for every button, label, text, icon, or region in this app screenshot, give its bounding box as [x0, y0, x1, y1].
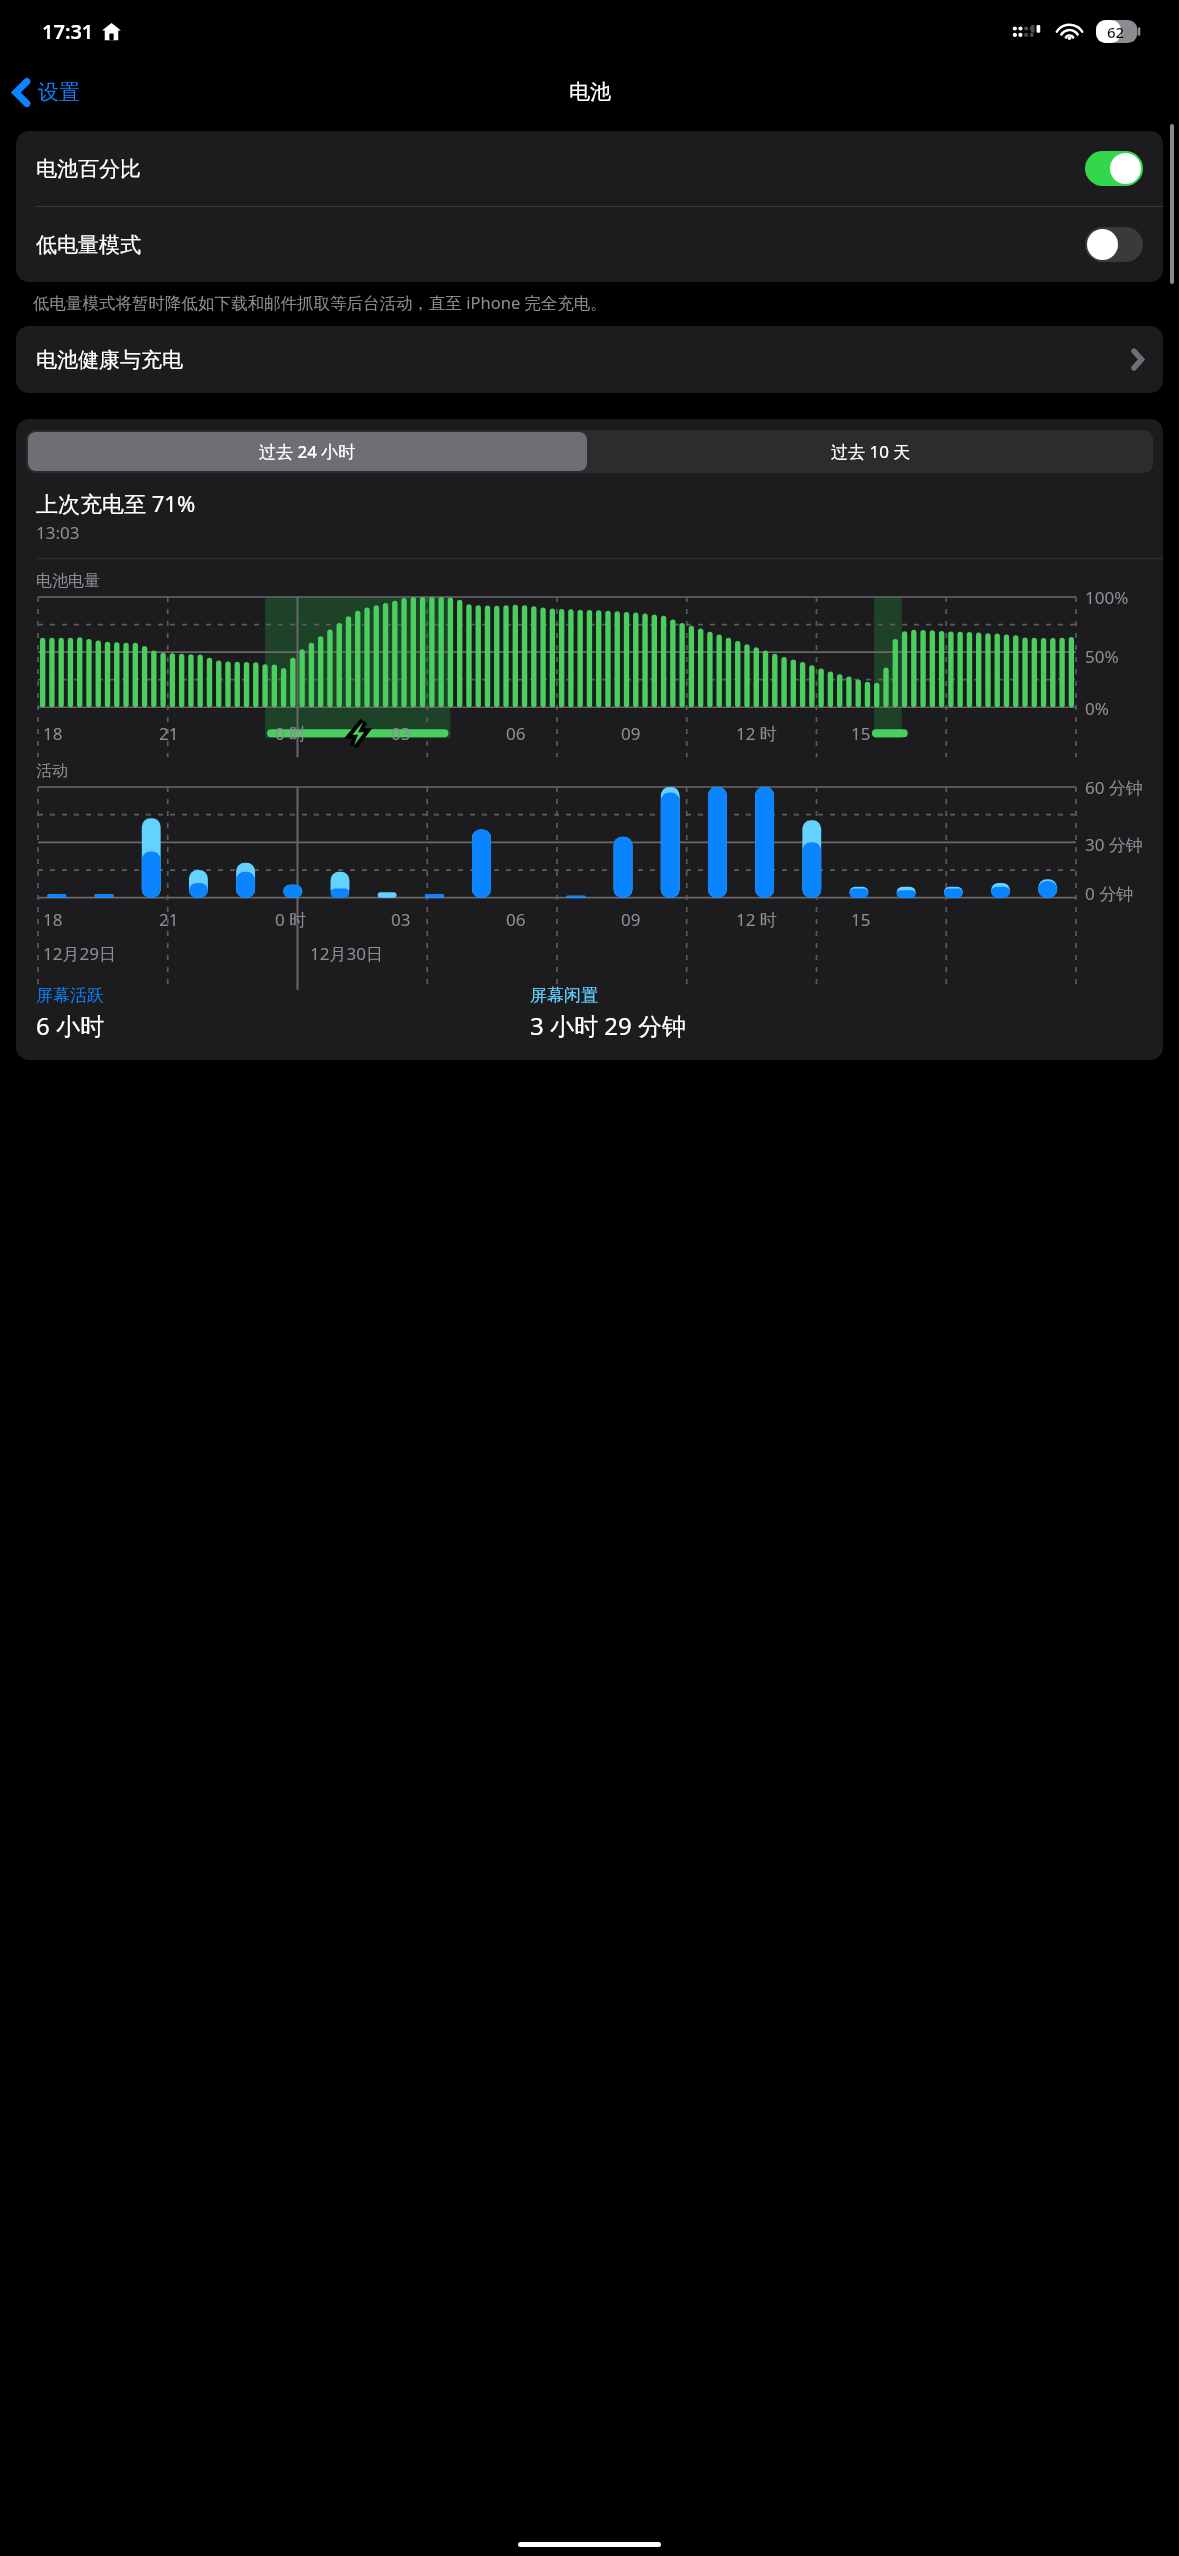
staticText: 50%	[1085, 645, 1119, 668]
staticText: 03	[391, 722, 411, 745]
button[interactable]: 过去 10 天	[591, 432, 1151, 471]
staticText: 09	[621, 722, 641, 745]
staticText: 15	[851, 908, 871, 931]
staticText: 上次充电至 71%	[36, 488, 196, 518]
staticText: 12月30日	[310, 942, 383, 965]
staticText: 09	[621, 908, 641, 931]
staticText: 06	[506, 908, 526, 931]
other: Home	[102, 22, 121, 41]
staticText: 100%	[1085, 586, 1129, 609]
other: 电池百分比	[1085, 151, 1143, 186]
staticText: 电池	[569, 79, 611, 105]
staticText: 电池百分比	[36, 156, 141, 182]
other: 低电量模式	[1085, 227, 1143, 262]
staticText: 低电量模式	[36, 232, 141, 258]
button[interactable]: 过去 24 小时	[28, 432, 587, 471]
staticText: 0 时	[275, 722, 307, 745]
staticText: 12 时	[736, 908, 777, 931]
staticText: 06	[506, 722, 526, 745]
staticText: 12月29日	[43, 942, 116, 965]
staticText: 电池电量	[36, 571, 100, 591]
staticText: 0%	[1085, 697, 1109, 720]
staticText: 12 时	[736, 722, 777, 745]
staticText: 15	[851, 722, 871, 745]
staticText: 0 时	[275, 908, 307, 931]
button[interactable]: 低电量模式	[16, 207, 1163, 282]
staticText: 17:31	[42, 18, 94, 45]
staticText: 过去 24 小时	[259, 440, 356, 463]
staticText: 30 分钟	[1085, 833, 1143, 856]
staticText: 0 分钟	[1085, 882, 1134, 905]
staticText: 过去 10 天	[831, 440, 911, 463]
staticText: 18	[43, 722, 63, 745]
button[interactable]: 电池健康与充电	[16, 326, 1163, 393]
staticText: 活动	[36, 761, 68, 781]
button[interactable]: 设置	[0, 71, 94, 113]
staticText: 21	[159, 908, 179, 931]
staticText: 设置	[38, 79, 80, 105]
staticText: 低电量模式将暂时降低如下载和邮件抓取等后台活动，直至 iPhone 完全充电。	[33, 291, 608, 314]
button[interactable]: 电池百分比	[16, 131, 1163, 206]
staticText: 21	[159, 722, 179, 745]
staticText: 60 分钟	[1085, 776, 1143, 799]
staticText: 18	[43, 908, 63, 931]
staticText: 62	[1107, 22, 1125, 42]
staticText: 3 小时 29 分钟	[530, 1009, 686, 1042]
staticText: 屏幕闲置	[530, 985, 598, 1006]
staticText: 电池健康与充电	[36, 347, 183, 373]
staticText: 13:03	[36, 521, 80, 544]
staticText: 屏幕活跃	[36, 985, 104, 1006]
staticText: 03	[391, 908, 411, 931]
staticText: 6 小时	[36, 1009, 104, 1042]
